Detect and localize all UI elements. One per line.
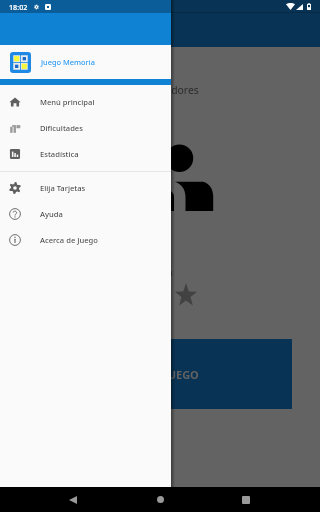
staticText: 18:02 xyxy=(9,2,28,12)
button[interactable]: Juego Memoria xyxy=(0,45,171,79)
staticText: Estadística xyxy=(40,149,79,159)
button[interactable]: Home xyxy=(144,487,176,512)
staticText: Record xyxy=(148,268,173,278)
button[interactable]: Menú principal xyxy=(0,89,171,115)
staticText: Elija Tarjetas xyxy=(40,183,86,193)
staticText: Juego Memoria xyxy=(41,57,95,67)
staticText: Ayuda xyxy=(40,209,63,219)
button[interactable]: Dificultades xyxy=(0,115,171,141)
button[interactable]: Ayuda xyxy=(0,201,171,227)
staticText: NUEVO JUEGO xyxy=(122,367,199,382)
button[interactable]: Recents xyxy=(230,487,262,512)
button[interactable]: Acerca de Juego xyxy=(0,227,171,253)
button[interactable]: NUEVO JUEGO xyxy=(28,339,292,409)
button[interactable]: Estadística xyxy=(0,141,171,167)
staticText: Dificultades xyxy=(40,123,83,133)
staticText: Acerca de Juego xyxy=(40,235,98,245)
button[interactable]: Back xyxy=(57,487,89,512)
staticText: Menú principal xyxy=(40,97,95,107)
staticText: Mejores jugadores xyxy=(108,83,199,97)
button[interactable]: Elija Tarjetas xyxy=(0,175,171,201)
